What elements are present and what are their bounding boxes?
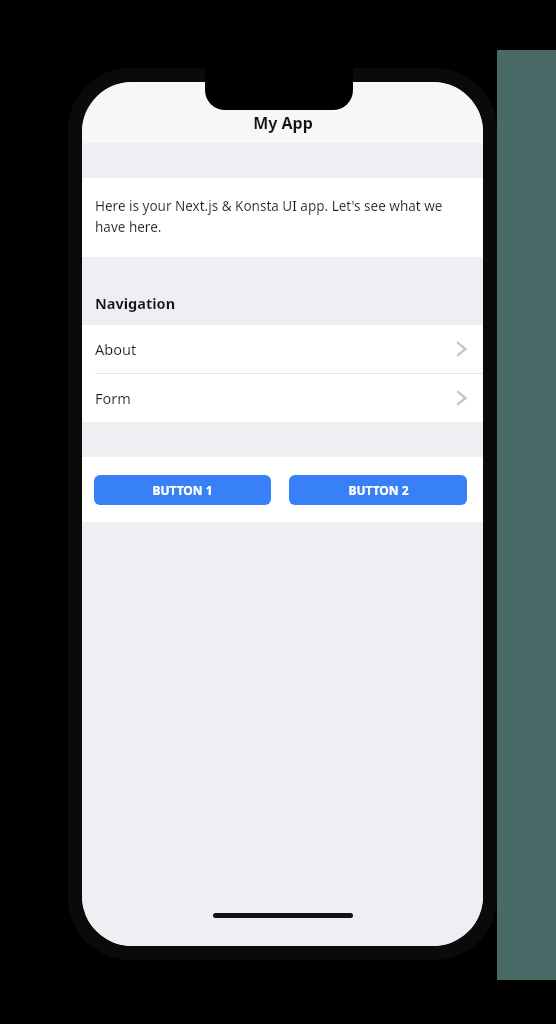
staticText: Here is your Next.js & Konsta UI app. Le…: [95, 197, 468, 236]
staticText: Form: [95, 388, 456, 408]
staticText: About: [95, 339, 456, 359]
button[interactable]: About: [82, 325, 483, 373]
staticText: BUTTON 1: [152, 482, 213, 498]
button[interactable]: BUTTON 2: [289, 475, 467, 505]
staticText: BUTTON 2: [348, 482, 409, 498]
button[interactable]: Form: [82, 374, 483, 422]
staticText: My App: [253, 112, 313, 134]
button[interactable]: BUTTON 1: [94, 475, 271, 505]
staticText: Navigation: [95, 293, 176, 313]
